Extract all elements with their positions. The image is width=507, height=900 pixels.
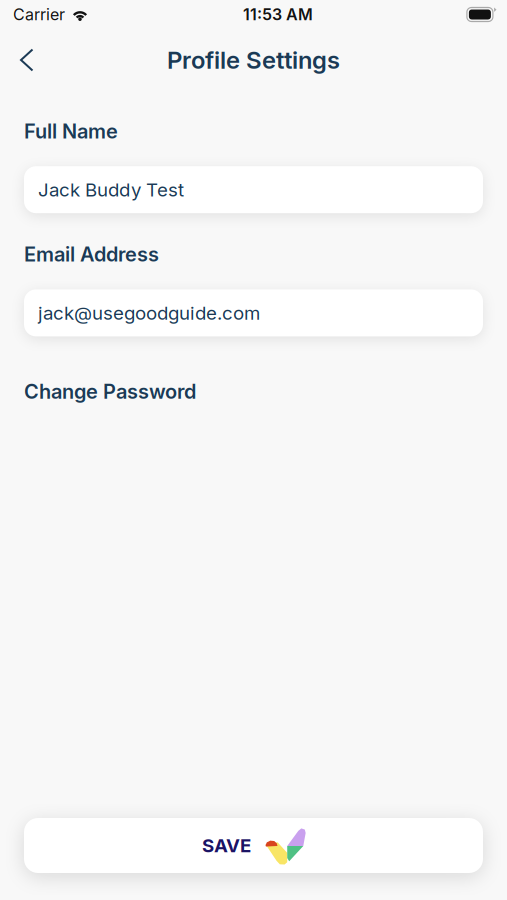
staticText: Jack Buddy Test <box>38 178 184 201</box>
staticText: Email Address <box>24 242 159 266</box>
staticText: SAVE <box>202 834 251 857</box>
button[interactable]: SAVE <box>24 818 483 873</box>
staticText: Full Name <box>24 119 118 143</box>
button[interactable]: Back <box>0 38 54 82</box>
staticText: Change Password <box>24 379 196 404</box>
staticText: Carrier <box>13 5 65 24</box>
button[interactable]: Change Password <box>24 379 483 404</box>
staticText: 11:53 AM <box>243 5 313 24</box>
staticText: jack@usegoodguide.com <box>38 302 260 324</box>
staticText: Profile Settings <box>167 45 340 74</box>
